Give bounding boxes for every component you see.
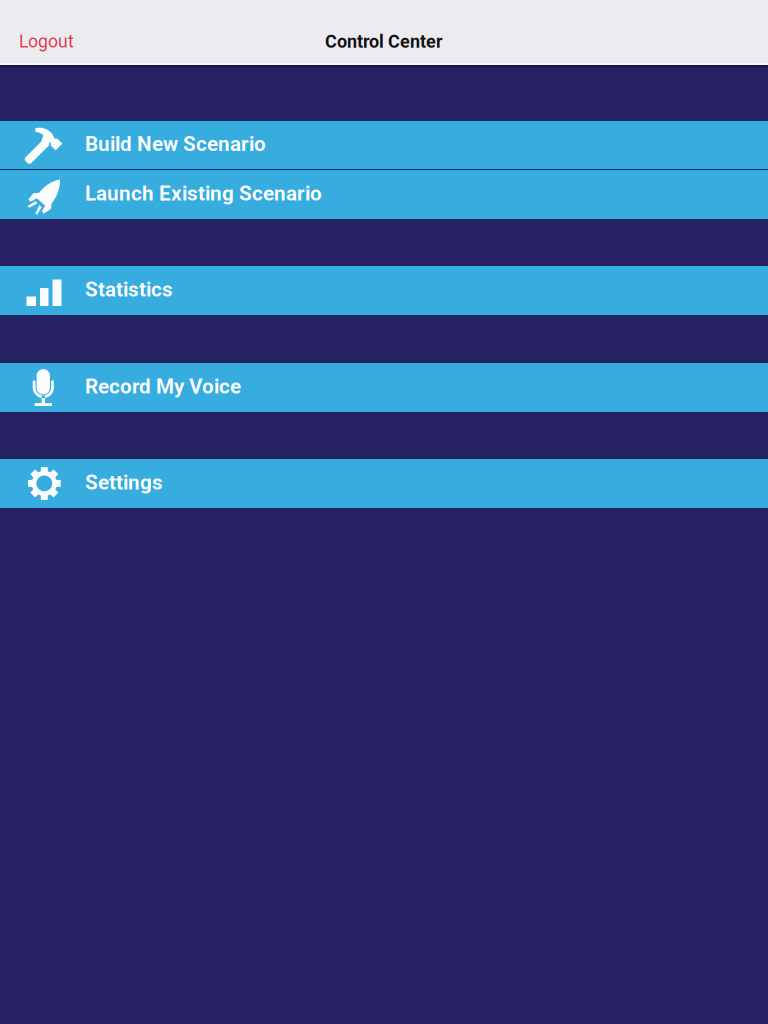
staticText: Control Center — [325, 31, 443, 52]
staticText: Build New Scenario — [85, 132, 266, 156]
button[interactable]: Logout — [10, 24, 83, 59]
button[interactable]: Settings — [0, 459, 768, 508]
staticText: Settings — [85, 470, 163, 495]
button[interactable]: Statistics — [0, 266, 768, 315]
staticText: Statistics — [85, 277, 173, 302]
staticText: Logout — [19, 31, 74, 52]
button[interactable]: Launch Existing Scenario — [0, 170, 768, 219]
staticText: Launch Existing Scenario — [85, 181, 322, 206]
button[interactable]: Build New Scenario — [0, 121, 768, 169]
staticText: Record My Voice — [85, 374, 241, 399]
button[interactable]: Record My Voice — [0, 363, 768, 412]
